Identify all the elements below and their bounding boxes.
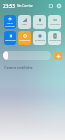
staticText: Screenshot <box>49 39 61 42</box>
staticText: Centro notifiche <box>4 65 33 70</box>
staticText: Suoneria <box>50 23 60 26</box>
staticText: Posizione <box>35 39 45 42</box>
staticText: 23:53 <box>3 3 15 9</box>
button[interactable]: Posizione <box>33 31 46 45</box>
staticText: No Carrier <box>17 4 33 8</box>
button[interactable]: Bluetooth <box>4 31 16 45</box>
staticText: Rotazione <box>19 39 30 42</box>
button[interactable]: Brightness <box>3 51 51 60</box>
staticText: Torcia <box>36 23 43 26</box>
button[interactable]: Torcia <box>33 15 46 29</box>
button[interactable]: Dati <box>18 15 31 29</box>
staticText: Dati <box>22 23 27 26</box>
button[interactable]: Screenshot <box>48 31 61 45</box>
button[interactable]: Suoneria <box>48 15 61 29</box>
button[interactable]: Wi-Fi <box>4 15 16 29</box>
staticText: Wi-Fi <box>7 22 13 25</box>
staticText: Bluetooth <box>5 39 16 42</box>
button[interactable]: Auto brightness <box>54 52 62 60</box>
button[interactable]: Rotazione <box>18 31 31 45</box>
staticText: TIM-3456 <box>5 25 15 28</box>
